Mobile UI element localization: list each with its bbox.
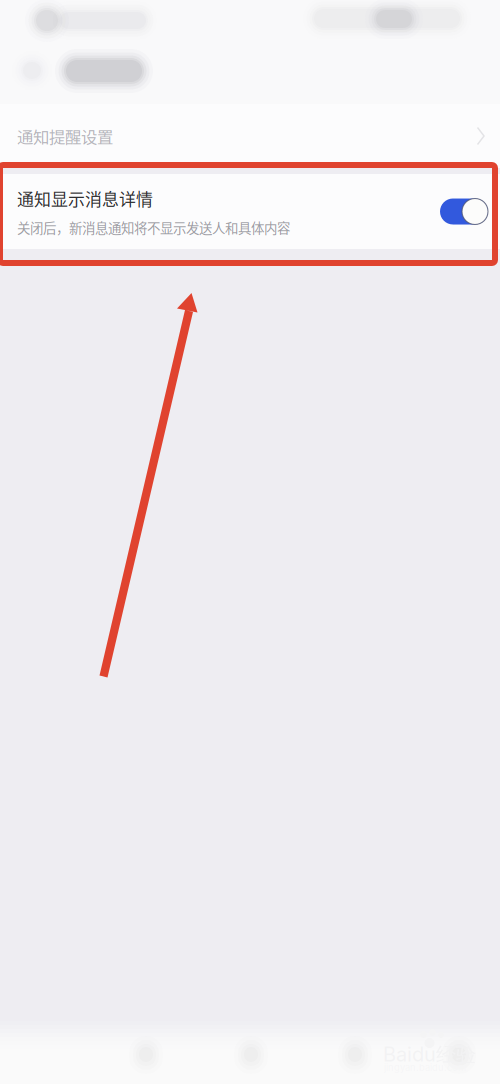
staticText: Baidu经验	[383, 1042, 476, 1067]
staticText: 关闭后，新消息通知将不显示发送人和具体内容	[17, 217, 290, 237]
staticText: 通知提醒设置	[17, 124, 113, 148]
button[interactable]: 通知显示消息详情	[0, 174, 500, 249]
staticText: 通知显示消息详情	[17, 186, 153, 210]
button[interactable]: 通知提醒设置	[0, 104, 500, 168]
